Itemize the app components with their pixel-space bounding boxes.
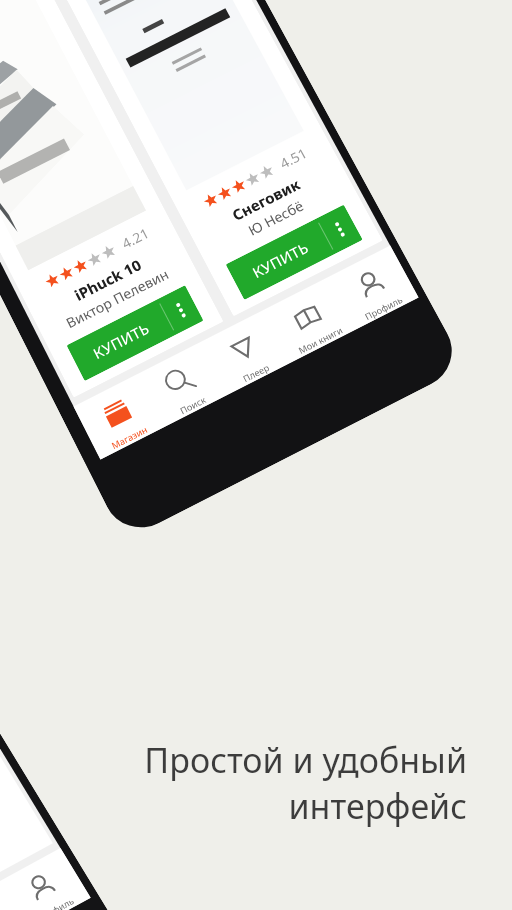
staticText: интерфейс	[0, 783, 467, 829]
staticText: Ю Несбё	[245, 196, 307, 239]
button[interactable]: КУПИТЬ	[226, 205, 363, 300]
button[interactable]: Мои книги	[263, 278, 355, 362]
staticText: Магазин	[109, 423, 149, 451]
staticText: Виктор Пелевин	[63, 264, 172, 332]
button[interactable]: Профиль	[327, 246, 418, 330]
button[interactable]: Плеер	[200, 310, 291, 395]
staticText: Поиск	[178, 393, 208, 416]
button[interactable]: Поиск	[136, 342, 227, 427]
staticText: КУПИТЬ	[249, 237, 312, 282]
staticText: Мои книги	[296, 324, 344, 356]
staticText: Плеер	[241, 361, 272, 384]
staticText: 4.51	[276, 144, 310, 172]
button[interactable]: Профиль	[0, 848, 91, 910]
staticText: 4.21	[118, 224, 152, 253]
staticText: Снеговик	[229, 174, 303, 225]
button[interactable]: 4.21	[0, 0, 224, 398]
button[interactable]: Магазин	[74, 375, 164, 459]
staticText: iPhuck 10	[71, 255, 145, 305]
staticText: Профиль	[362, 293, 404, 322]
button[interactable]: 4.51	[10, 0, 383, 316]
staticText: Профиль	[34, 895, 76, 910]
staticText: Простой и удобный	[0, 737, 467, 783]
staticText: КУПИТЬ	[89, 318, 153, 363]
button[interactable]: КУПИТЬ	[66, 285, 204, 381]
